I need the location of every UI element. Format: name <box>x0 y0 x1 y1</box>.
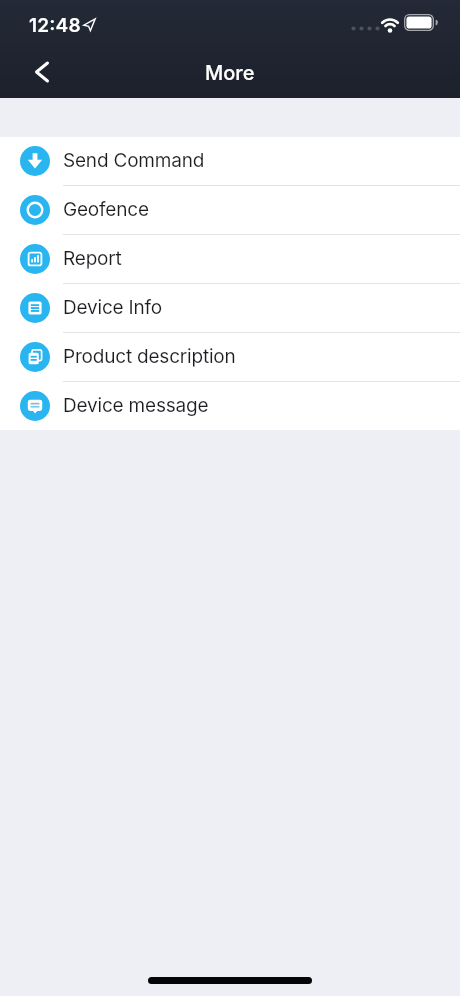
staticText: Product description <box>63 345 236 368</box>
staticText: 12:48 <box>29 14 81 37</box>
staticText: Device message <box>63 394 209 417</box>
button[interactable]: Product description <box>0 333 460 381</box>
button[interactable]: Send Command <box>0 137 460 185</box>
staticText: Send Command <box>63 149 205 172</box>
staticText: Geofence <box>63 198 149 221</box>
staticText: More <box>205 61 255 85</box>
staticText: Device Info <box>63 296 162 319</box>
staticText: Report <box>63 247 122 270</box>
button[interactable] <box>24 54 60 90</box>
button[interactable]: Report <box>0 235 460 283</box>
button[interactable]: Device message <box>0 382 460 430</box>
button[interactable]: Device Info <box>0 284 460 332</box>
button[interactable]: Geofence <box>0 186 460 234</box>
